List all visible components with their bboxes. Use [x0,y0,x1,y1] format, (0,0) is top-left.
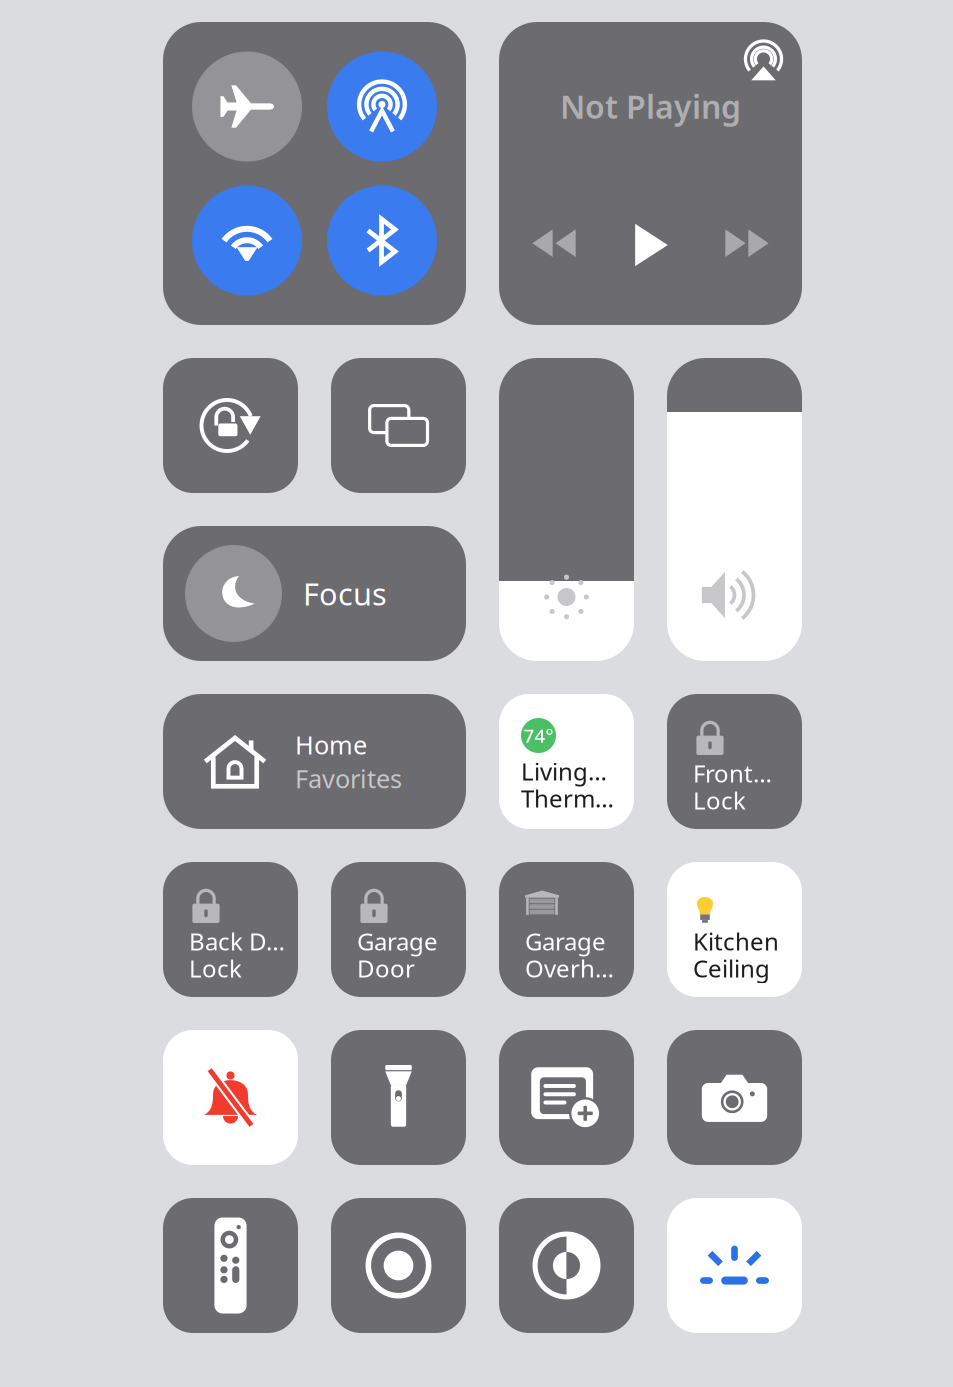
button[interactable]: Volume [667,358,802,661]
button[interactable]: Screen Mirroring [331,358,466,493]
button[interactable]: Now Playing [499,22,802,325]
button[interactable]: Garage [499,862,634,997]
button[interactable]: Front… [667,694,802,829]
button[interactable]: Screen Recording [331,1198,466,1333]
staticText: Back D… [189,925,285,957]
button[interactable]: Kitchen [667,862,802,997]
button[interactable]: Camera [667,1030,802,1165]
staticText: Favorites [295,761,402,795]
button[interactable]: Home [163,694,466,829]
button[interactable]: Notes [499,1030,634,1165]
button[interactable]: Back D… [163,862,298,997]
staticText: Living… [521,755,607,787]
staticText: Therm… [521,782,614,814]
staticText: Focus [303,573,387,614]
button[interactable]: Dark Mode [499,1198,634,1333]
staticText: Door [357,952,415,984]
button[interactable]: Flashlight [331,1030,466,1165]
staticText: Lock [189,952,242,984]
staticText: Not Playing [560,85,741,127]
button[interactable]: Focus [163,526,466,661]
button[interactable]: Garage [331,862,466,997]
staticText: 74° [523,723,553,748]
staticText: Overh… [525,952,614,984]
staticText: Ceiling [693,952,770,984]
button[interactable]: Hearing [667,1198,802,1333]
staticText: Garage [357,925,438,957]
button[interactable]: Silent Mode [163,1030,298,1165]
button[interactable]: Connectivity [163,22,466,325]
staticText: Home [295,728,367,761]
staticText: Front… [693,757,772,789]
staticText: Garage [525,925,606,957]
staticText: Lock [693,784,746,816]
button[interactable]: Orientation Lock [163,358,298,493]
button[interactable]: Apple TV Remote [163,1198,298,1333]
staticText: Kitchen [693,925,779,957]
button[interactable]: 74° [499,694,634,829]
button[interactable]: Brightness [499,358,634,661]
